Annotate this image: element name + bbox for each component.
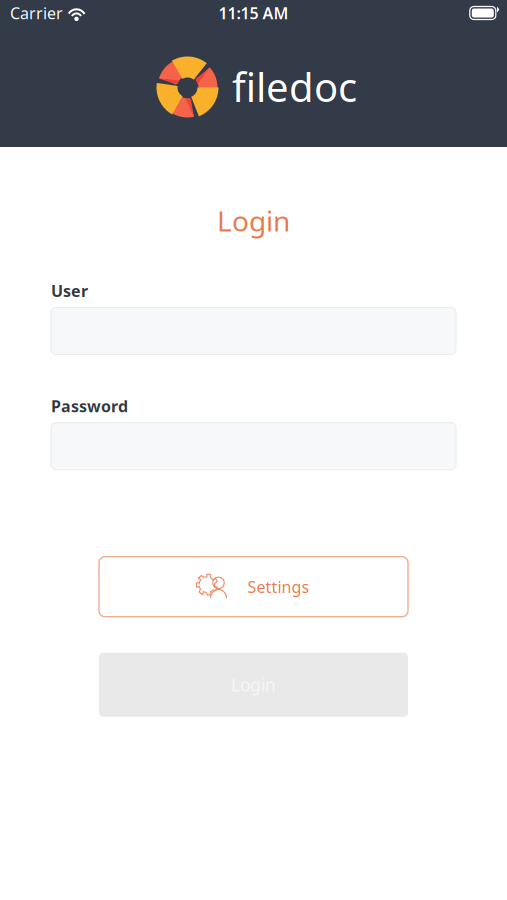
button[interactable]: Settings: [99, 557, 408, 617]
staticText: User: [51, 280, 88, 301]
staticText: 11:15 AM: [218, 2, 288, 24]
staticText: Login: [231, 673, 276, 696]
staticText: Login: [217, 202, 290, 239]
staticText: filedoc: [232, 60, 357, 113]
staticText: Password: [51, 395, 128, 417]
staticText: Settings: [247, 576, 309, 597]
staticText: Carrier: [10, 2, 63, 24]
